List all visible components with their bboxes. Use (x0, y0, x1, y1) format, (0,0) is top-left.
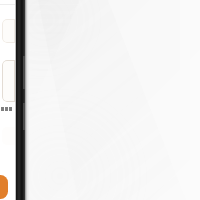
button[interactable]: Add (0, 175, 8, 199)
button[interactable] (2, 60, 15, 102)
button[interactable] (2, 19, 15, 43)
